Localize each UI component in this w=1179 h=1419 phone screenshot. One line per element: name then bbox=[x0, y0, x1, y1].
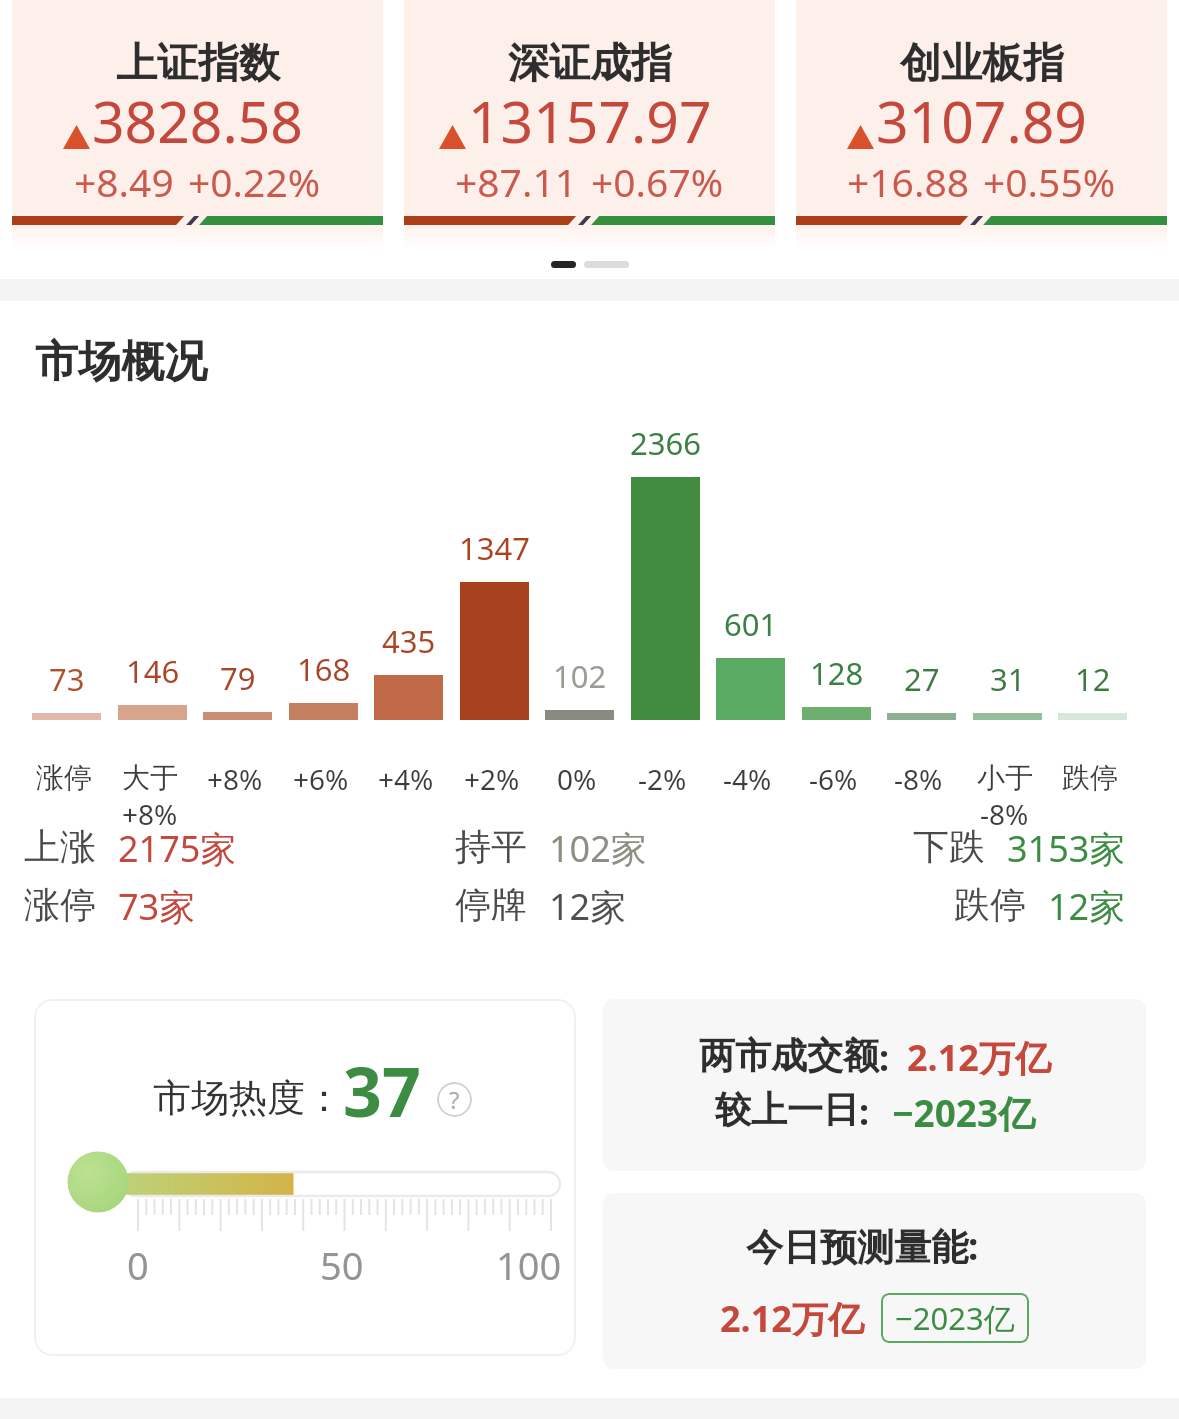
button[interactable]: 创业板指 bbox=[796, 0, 1167, 250]
staticText: 涨停 bbox=[24, 882, 96, 927]
staticText: +6% bbox=[293, 760, 349, 798]
staticText: 102 bbox=[553, 655, 607, 697]
staticText: 73 bbox=[49, 658, 85, 700]
staticText: 上证指数 bbox=[116, 38, 280, 90]
staticText: 31 bbox=[990, 658, 1026, 700]
staticText: 435 bbox=[382, 620, 436, 662]
staticText: : bbox=[859, 1087, 870, 1136]
staticText: 3153家 bbox=[1007, 824, 1126, 870]
staticText: 37 bbox=[343, 1044, 421, 1137]
staticText: +87.11 bbox=[455, 155, 577, 208]
staticText: +4% bbox=[378, 760, 434, 798]
button[interactable]: 两市成交额 bbox=[603, 999, 1146, 1171]
staticText: 市场概况 bbox=[35, 335, 207, 389]
staticText: 2.12万亿 bbox=[907, 1033, 1051, 1082]
staticText: 128 bbox=[810, 652, 864, 694]
staticText: 50 bbox=[320, 1239, 364, 1291]
staticText: -8% bbox=[894, 760, 943, 798]
staticText: 2366 bbox=[630, 422, 701, 464]
staticText: 涨停 bbox=[36, 760, 92, 795]
staticText: 79 bbox=[220, 657, 256, 699]
staticText: 下跌 bbox=[913, 824, 985, 869]
staticText: +16.88 bbox=[847, 155, 969, 208]
staticText: -4% bbox=[723, 760, 772, 798]
staticText: +0.22% bbox=[188, 155, 321, 208]
staticText: +0.67% bbox=[591, 155, 724, 208]
staticText: +0.55% bbox=[983, 155, 1116, 208]
staticText: -8% bbox=[980, 795, 1029, 833]
staticText: 12家 bbox=[1048, 882, 1126, 928]
staticText: +8.49 bbox=[74, 155, 174, 208]
staticText: 跌停 bbox=[1062, 760, 1118, 795]
staticText: 停牌 bbox=[455, 882, 527, 927]
staticText: +8% bbox=[122, 795, 178, 833]
staticText: 100 bbox=[496, 1239, 562, 1291]
staticText: -2% bbox=[638, 760, 687, 798]
staticText: 小于 bbox=[977, 760, 1033, 795]
staticText: ? bbox=[449, 1083, 460, 1116]
button[interactable]: 市场热度 bbox=[34, 999, 576, 1356]
staticText: 市场热度 bbox=[153, 1074, 305, 1122]
staticText: ： bbox=[305, 1074, 343, 1122]
staticText: 今日预测量能: bbox=[746, 1220, 979, 1271]
staticText: 3828.58 bbox=[92, 82, 303, 160]
staticText: 跌停 bbox=[954, 882, 1026, 927]
staticText: 较上一日 bbox=[715, 1087, 859, 1132]
staticText: +2% bbox=[464, 760, 520, 798]
staticText: 大于 bbox=[122, 760, 178, 795]
staticText: 13157.97 bbox=[468, 82, 712, 160]
staticText: 1347 bbox=[459, 527, 530, 569]
staticText: 两市成交额 bbox=[699, 1033, 879, 1078]
staticText: 73家 bbox=[118, 882, 196, 928]
staticText: 601 bbox=[724, 603, 778, 645]
staticText: 2175家 bbox=[118, 824, 237, 870]
staticText: 深证成指 bbox=[508, 38, 672, 90]
button[interactable]: 上证指数 bbox=[12, 0, 383, 250]
staticText: 168 bbox=[297, 648, 351, 690]
staticText: 0 bbox=[127, 1239, 149, 1291]
staticText: −2023亿 bbox=[895, 1297, 1015, 1339]
staticText: -6% bbox=[809, 760, 858, 798]
staticText: −2023亿 bbox=[892, 1087, 1036, 1138]
staticText: : bbox=[879, 1033, 890, 1082]
staticText: 3107.89 bbox=[876, 82, 1087, 160]
staticText: 0% bbox=[557, 760, 597, 798]
staticText: 上涨 bbox=[24, 824, 96, 869]
staticText: 12家 bbox=[549, 882, 627, 928]
button[interactable]: 深证成指 bbox=[404, 0, 775, 250]
staticText: 102家 bbox=[549, 824, 647, 870]
staticText: 创业板指 bbox=[900, 38, 1064, 90]
button[interactable]: 今日预测量能: bbox=[603, 1193, 1146, 1369]
staticText: 146 bbox=[126, 650, 180, 692]
staticText: 2.12万亿 bbox=[720, 1294, 864, 1343]
staticText: +8% bbox=[207, 760, 263, 798]
staticText: 持平 bbox=[455, 824, 527, 869]
staticText: 27 bbox=[904, 658, 940, 700]
staticText: 12 bbox=[1075, 658, 1111, 700]
